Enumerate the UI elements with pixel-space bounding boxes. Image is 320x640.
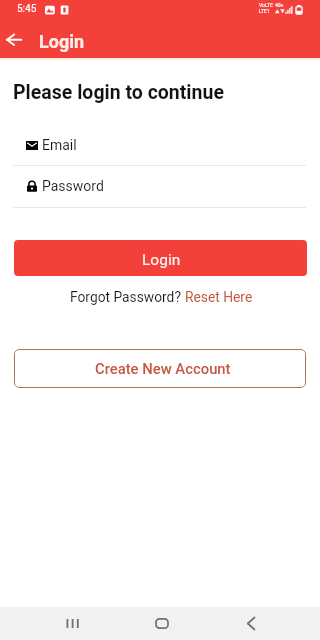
- button[interactable]: Home: [142, 607, 182, 640]
- staticText: Reset Here: [185, 289, 253, 305]
- staticText: Login: [39, 31, 85, 52]
- button[interactable]: Back: [6, 32, 24, 48]
- staticText: 40+: [275, 2, 284, 8]
- staticText: Please login to continue: [13, 81, 224, 104]
- staticText: Email: [42, 137, 77, 153]
- button[interactable]: Recent apps: [52, 607, 92, 640]
- button[interactable]: [13, 133, 306, 163]
- staticText: Create New Account: [95, 360, 231, 377]
- button[interactable]: Back: [231, 607, 271, 640]
- button[interactable]: [13, 174, 306, 204]
- button[interactable]: Create New Account: [14, 349, 306, 388]
- button[interactable]: Reset Here: [185, 289, 253, 305]
- staticText: 5:45: [17, 3, 37, 15]
- staticText: Login: [142, 251, 181, 269]
- button[interactable]: Login: [14, 240, 307, 276]
- staticText: VoLTE: [259, 2, 273, 8]
- staticText: Password: [42, 178, 104, 194]
- staticText: Forgot Password?: [70, 289, 185, 305]
- staticText: LTE1: [259, 8, 270, 14]
